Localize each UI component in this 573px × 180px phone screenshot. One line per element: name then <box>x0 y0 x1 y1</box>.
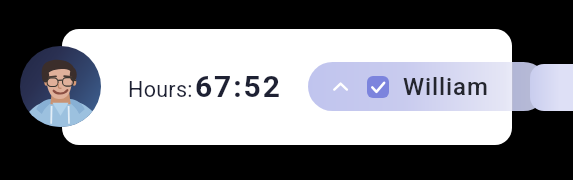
staticText: William <box>403 73 489 101</box>
button[interactable] <box>308 62 548 111</box>
staticText: 67:52 <box>195 69 282 104</box>
button[interactable] <box>62 29 512 145</box>
button[interactable]: Next filter <box>530 64 573 111</box>
button[interactable]: Selected <box>367 76 389 98</box>
button[interactable]: Profile photo <box>20 46 101 127</box>
staticText: Hours: <box>128 77 193 102</box>
other: Collapse <box>333 81 349 93</box>
